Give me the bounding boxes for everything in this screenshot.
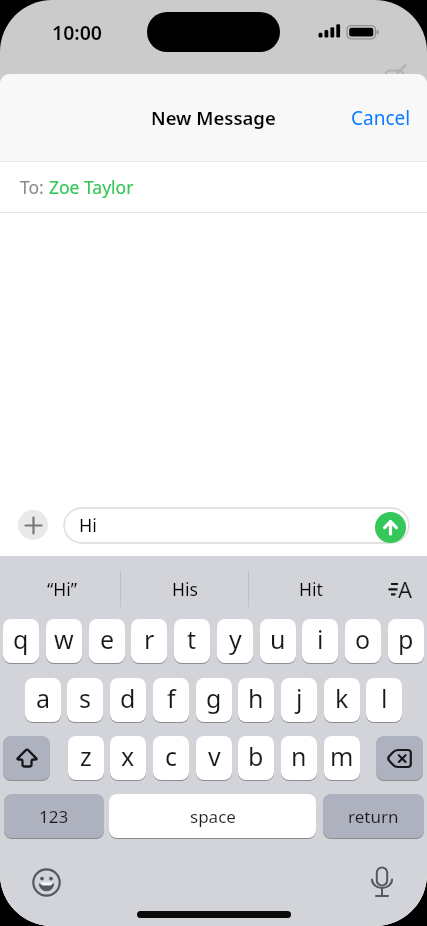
button[interactable]: His <box>127 566 243 612</box>
button[interactable]: e <box>89 619 125 663</box>
button[interactable]: r <box>131 619 167 663</box>
button[interactable] <box>366 862 398 902</box>
staticText: return <box>348 805 399 828</box>
staticText: v <box>208 739 221 773</box>
staticText: y <box>229 622 242 656</box>
button[interactable]: f <box>153 678 189 722</box>
staticText: m <box>330 739 354 773</box>
button[interactable] <box>3 736 50 780</box>
staticText: z <box>80 739 92 773</box>
staticText: t <box>187 622 197 656</box>
staticText: His <box>172 577 198 601</box>
staticText: b <box>248 739 264 773</box>
staticText: u <box>270 622 286 656</box>
staticText: Cancel <box>351 105 411 131</box>
staticText: Hi <box>79 513 97 538</box>
staticText: x <box>121 739 135 773</box>
staticText: q <box>13 622 29 656</box>
staticText: r <box>144 622 155 656</box>
button[interactable]: n <box>281 736 317 780</box>
button[interactable] <box>18 510 48 540</box>
staticText: To: <box>20 175 49 199</box>
staticText: New Message <box>151 105 276 130</box>
button[interactable]: h <box>238 678 274 722</box>
staticText: “Hi” <box>47 577 78 601</box>
button[interactable]: a <box>25 678 61 722</box>
staticText: p <box>398 622 414 656</box>
staticText: l <box>381 681 388 715</box>
button[interactable]: z <box>68 736 104 780</box>
button[interactable]: d <box>110 678 146 722</box>
button[interactable] <box>32 868 61 897</box>
staticText: w <box>54 622 74 656</box>
staticText: c <box>165 739 178 773</box>
staticText: o <box>355 622 371 656</box>
staticText: k <box>335 681 349 715</box>
staticText: d <box>120 681 136 715</box>
staticText: A <box>398 574 413 604</box>
button[interactable]: 123 <box>4 794 104 838</box>
button[interactable]: q <box>3 619 39 663</box>
button[interactable]: v <box>196 736 232 780</box>
button[interactable]: p <box>388 619 424 663</box>
button[interactable]: return <box>323 794 424 838</box>
staticText: e <box>100 622 115 656</box>
button[interactable]: “Hi” <box>10 566 115 612</box>
staticText: a <box>36 681 51 715</box>
staticText: n <box>291 739 307 773</box>
button[interactable]: t <box>174 619 210 663</box>
button[interactable]: w <box>46 619 82 663</box>
button[interactable]: Cancel <box>351 105 411 131</box>
button[interactable] <box>375 512 406 543</box>
button[interactable]: g <box>196 678 232 722</box>
staticText: Hit <box>299 577 323 601</box>
button[interactable]: m <box>324 736 360 780</box>
staticText: s <box>79 681 91 715</box>
staticText: 10:00 <box>52 19 102 45</box>
staticText: 123 <box>39 805 69 828</box>
button[interactable]: s <box>67 678 103 722</box>
button[interactable]: i <box>302 619 338 663</box>
button[interactable]: To: <box>0 162 427 212</box>
staticText: g <box>206 681 222 715</box>
staticText: Zoe Taylor <box>49 175 134 199</box>
button[interactable]: Hi <box>63 507 410 544</box>
button[interactable]: space <box>109 794 316 838</box>
button[interactable]: b <box>238 736 274 780</box>
button[interactable]: k <box>324 678 360 722</box>
staticText: f <box>167 681 176 715</box>
button[interactable]: l <box>366 678 402 722</box>
button[interactable] <box>376 736 423 780</box>
staticText: i <box>317 622 324 656</box>
button[interactable]: j <box>281 678 317 722</box>
staticText: space <box>190 805 236 828</box>
button[interactable] <box>376 574 416 604</box>
staticText: j <box>296 681 303 715</box>
button[interactable]: x <box>110 736 146 780</box>
button[interactable]: Hit <box>253 566 368 612</box>
staticText: h <box>248 681 264 715</box>
button[interactable]: c <box>153 736 189 780</box>
button[interactable]: o <box>345 619 381 663</box>
button[interactable]: y <box>217 619 253 663</box>
button[interactable]: u <box>260 619 296 663</box>
